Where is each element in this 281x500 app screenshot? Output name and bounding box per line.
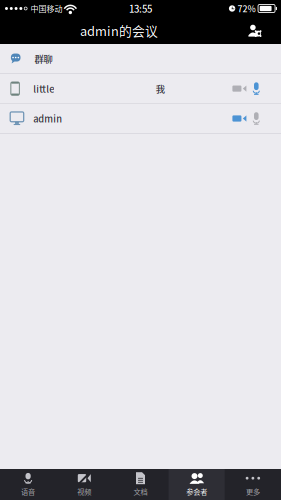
button[interactable]: little <box>0 74 281 104</box>
staticText: 72% <box>237 2 255 15</box>
button[interactable]: 视频 <box>56 469 112 500</box>
button[interactable]: 文档 <box>112 469 169 500</box>
button[interactable]: 更多 <box>225 469 281 500</box>
staticText: admin <box>33 112 62 125</box>
staticText: 我 <box>156 82 165 95</box>
button[interactable]: Manage participants <box>243 19 266 42</box>
staticText: admin的会议 <box>80 21 158 40</box>
button[interactable]: 参会者 <box>169 469 225 500</box>
button[interactable]: 群聊 <box>0 44 281 74</box>
staticText: 更多 <box>246 486 260 497</box>
staticText: 中国移动 <box>31 3 63 14</box>
button[interactable]: 语音 <box>0 469 56 500</box>
staticText: 视频 <box>77 486 91 497</box>
staticText: 文档 <box>133 486 147 497</box>
staticText: 13:55 <box>129 1 152 15</box>
staticText: 群聊 <box>34 52 52 65</box>
staticText: little <box>33 82 54 95</box>
staticText: 语音 <box>21 486 35 497</box>
button[interactable]: admin <box>0 104 281 134</box>
staticText: 参会者 <box>186 486 207 497</box>
